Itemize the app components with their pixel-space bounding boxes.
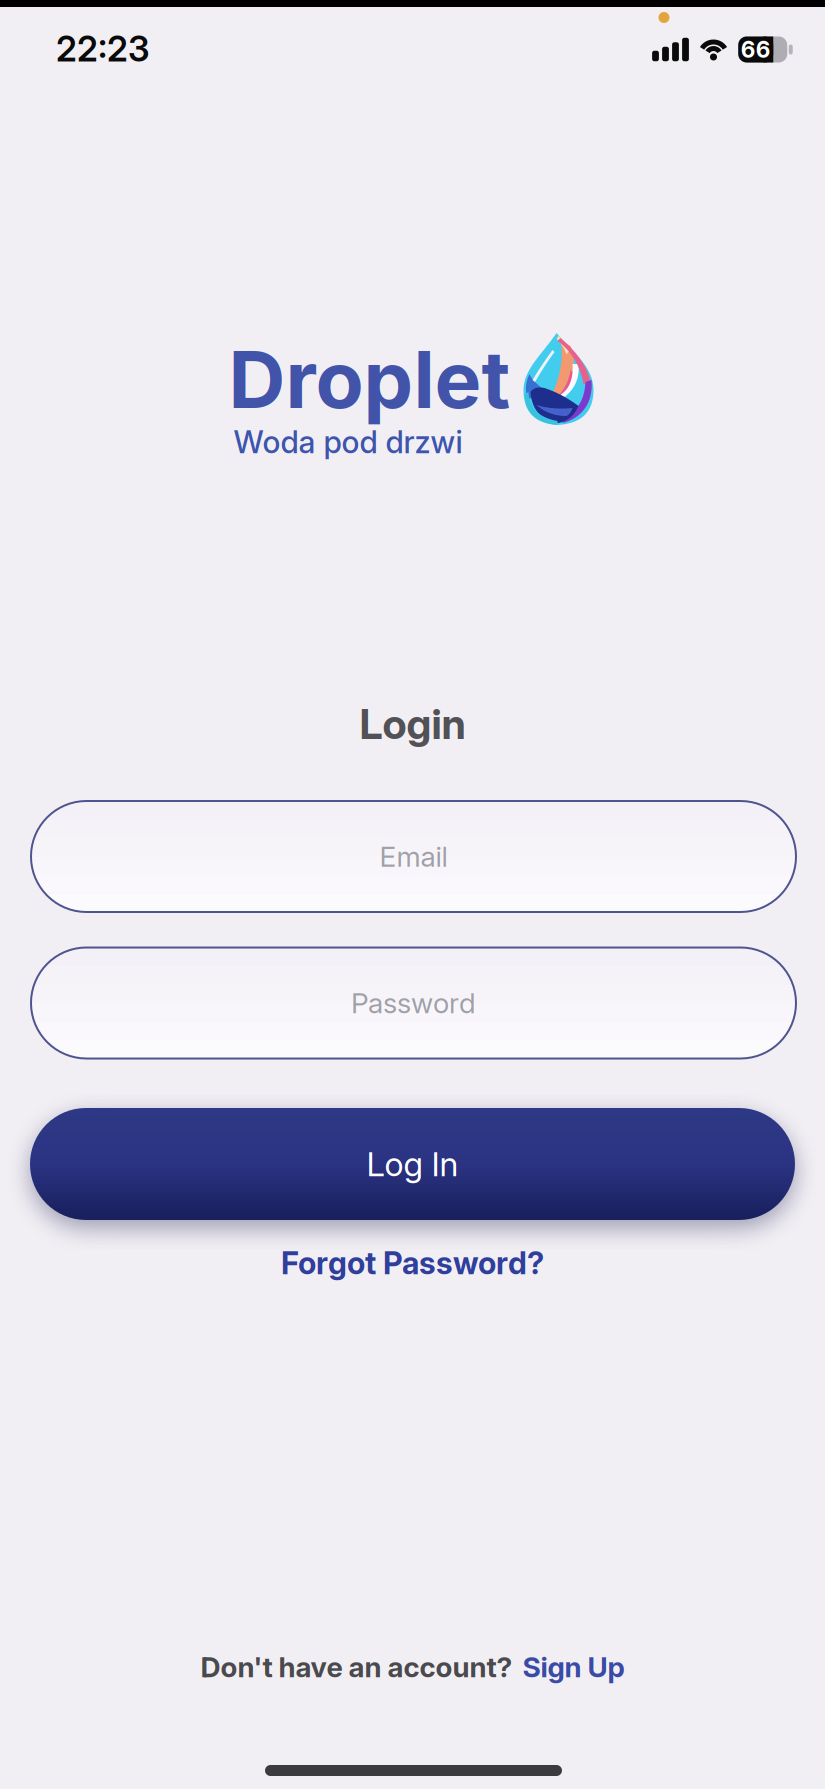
staticText: Sign Up (522, 1650, 624, 1683)
staticText: Droplet (228, 333, 510, 426)
staticText: Forgot Password? (281, 1245, 544, 1281)
staticText: Don't have an account? (200, 1650, 512, 1683)
button[interactable]: Sign Up (522, 1650, 624, 1683)
button[interactable]: Email (31, 801, 796, 912)
staticText: Woda pod drzwi (233, 424, 462, 460)
staticText: 22:23 (56, 29, 150, 69)
button[interactable]: Forgot Password? (281, 1245, 544, 1281)
staticText: Password (351, 986, 476, 1019)
staticText: 66 (741, 36, 771, 63)
staticText: Login (359, 700, 465, 748)
button[interactable]: Log In (30, 1108, 795, 1220)
button[interactable]: Password (31, 947, 796, 1058)
staticText: Email (379, 840, 447, 873)
staticText: Log In (366, 1144, 458, 1184)
